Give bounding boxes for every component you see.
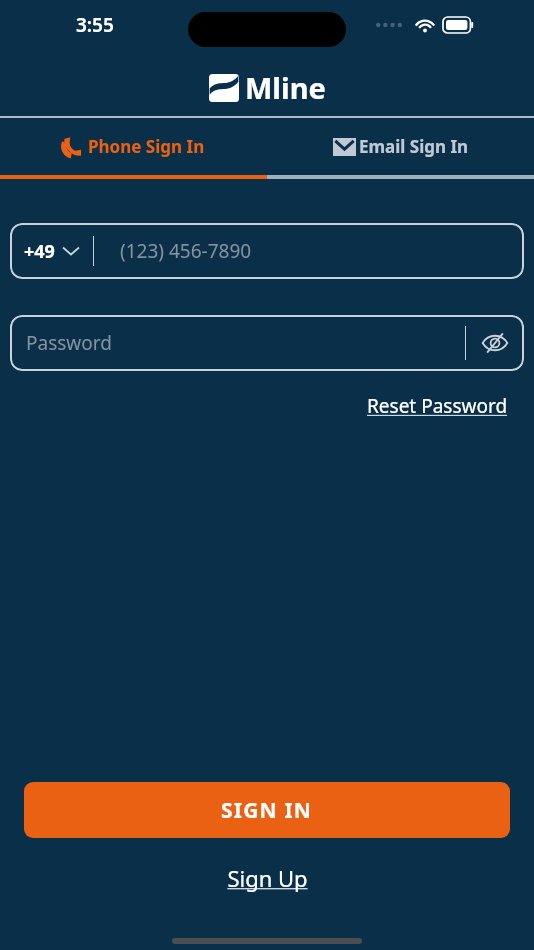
staticText: SIGN IN [221, 796, 313, 825]
staticText: Email Sign In [359, 135, 469, 158]
button[interactable]: Show password [466, 315, 524, 371]
button[interactable]: +49 [10, 223, 524, 279]
staticText: (123) 456-7890 [120, 238, 252, 264]
staticText: 3:55 [76, 12, 114, 38]
button[interactable]: Phone Sign In [0, 118, 267, 175]
button[interactable]: Sign Up [219, 860, 316, 896]
button[interactable]: Password [10, 315, 524, 371]
staticText: +49 [24, 239, 55, 264]
staticText: Phone Sign In [88, 135, 205, 158]
staticText: Sign Up [227, 863, 308, 893]
button[interactable]: Reset Password [363, 389, 512, 423]
button[interactable]: SIGN IN [24, 782, 510, 838]
staticText: Password [26, 330, 465, 356]
staticText: Reset Password [367, 393, 508, 419]
staticText: Mline [245, 68, 326, 107]
button[interactable]: Email Sign In [267, 118, 534, 175]
